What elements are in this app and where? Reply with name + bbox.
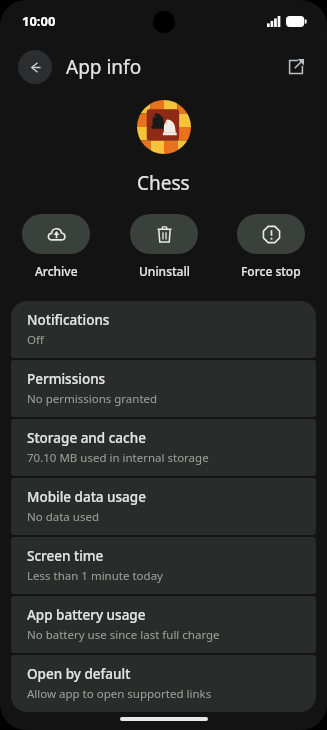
staticText: Allow app to open supported links [27, 686, 212, 702]
button[interactable]: Open by default [11, 655, 316, 712]
staticText: Storage and cache [27, 429, 146, 447]
button[interactable]: Storage and cache [11, 419, 316, 476]
button[interactable]: Open in new [279, 50, 313, 84]
staticText: Open by default [27, 665, 131, 683]
staticText: Chess [137, 170, 190, 196]
staticText: Permissions [27, 370, 106, 388]
staticText: No data used [27, 509, 99, 525]
staticText: Less than 1 minute today [27, 568, 163, 584]
button[interactable]: Back [18, 50, 52, 84]
button[interactable]: Force stop [237, 214, 305, 279]
staticText: Uninstall [139, 263, 190, 279]
staticText: Screen time [27, 547, 104, 565]
staticText: App info [66, 54, 142, 80]
staticText: Off [27, 332, 44, 348]
button[interactable]: Screen time [11, 537, 316, 594]
button[interactable]: Notifications [11, 301, 316, 358]
staticText: Notifications [27, 311, 110, 329]
button[interactable]: Archive [22, 214, 90, 279]
button[interactable]: Mobile data usage [11, 478, 316, 535]
button[interactable]: Uninstall [130, 214, 198, 279]
staticText: No battery use since last full charge [27, 627, 220, 643]
staticText: Mobile data usage [27, 488, 146, 506]
staticText: Force stop [241, 263, 301, 279]
staticText: 70.10 MB used in internal storage [27, 450, 209, 466]
button[interactable]: App battery usage [11, 596, 316, 653]
staticText: App battery usage [27, 606, 146, 624]
button[interactable]: Permissions [11, 360, 316, 417]
staticText: 10:00 [22, 12, 56, 30]
staticText: No permissions granted [27, 391, 158, 407]
staticText: Archive [35, 263, 78, 279]
